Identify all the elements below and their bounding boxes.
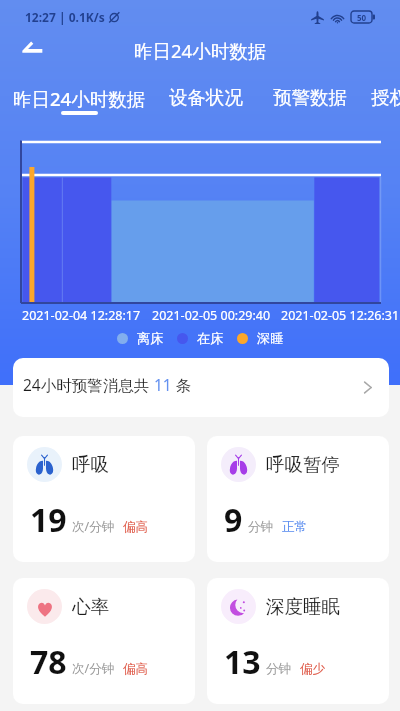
button[interactable]: 授权: [371, 86, 400, 109]
staticText: 分钟: [248, 519, 274, 535]
button[interactable]: 心率: [13, 578, 195, 704]
button[interactable]: 呼吸暂停: [207, 436, 389, 562]
staticText: 次/分钟: [72, 660, 115, 677]
staticText: 昨日24小时数据: [13, 86, 146, 111]
staticText: 分钟: [266, 661, 292, 677]
staticText: 离床: [137, 330, 164, 347]
staticText: 2021-02-05 00:29:40: [152, 307, 271, 324]
staticText: 呼吸暂停: [266, 453, 340, 476]
staticText: 心率: [72, 595, 109, 618]
staticText: 深睡: [257, 330, 284, 347]
staticText: 2021-02-04 12:28:17: [22, 307, 141, 324]
staticText: 呼吸: [72, 453, 109, 476]
button[interactable]: 设备状况: [169, 86, 243, 109]
staticText: 在床: [197, 330, 224, 347]
button[interactable]: 24小时预警消息共: [13, 358, 389, 417]
staticText: 24小时预警消息共: [23, 374, 154, 395]
staticText: 授权: [371, 86, 400, 109]
staticText: 19: [30, 498, 67, 542]
button[interactable]: 昨日24小时数据: [13, 86, 146, 115]
button[interactable]: 呼吸: [13, 436, 195, 562]
staticText: 偏少: [300, 661, 326, 677]
staticText: 50: [357, 12, 367, 23]
staticText: 深度睡眠: [266, 595, 340, 618]
staticText: 偏高: [123, 661, 149, 677]
staticText: 13: [224, 640, 261, 684]
staticText: 12:27 | 0.1K/s: [25, 9, 105, 25]
staticText: 次/分钟: [72, 518, 115, 535]
staticText: 正常: [282, 519, 308, 535]
staticText: 设备状况: [169, 86, 243, 109]
staticText: 11: [154, 374, 172, 395]
staticText: 昨日24小时数据: [134, 38, 267, 63]
staticText: 2021-02-05 12:26:31: [281, 307, 400, 324]
staticText: 偏高: [123, 519, 149, 535]
button[interactable]: Back: [14, 30, 50, 66]
button[interactable]: 预警数据: [273, 86, 347, 109]
staticText: 条: [172, 374, 192, 395]
staticText: 9: [224, 498, 243, 542]
button[interactable]: 深度睡眠: [207, 578, 389, 704]
staticText: 预警数据: [273, 86, 347, 109]
staticText: 78: [30, 640, 67, 684]
